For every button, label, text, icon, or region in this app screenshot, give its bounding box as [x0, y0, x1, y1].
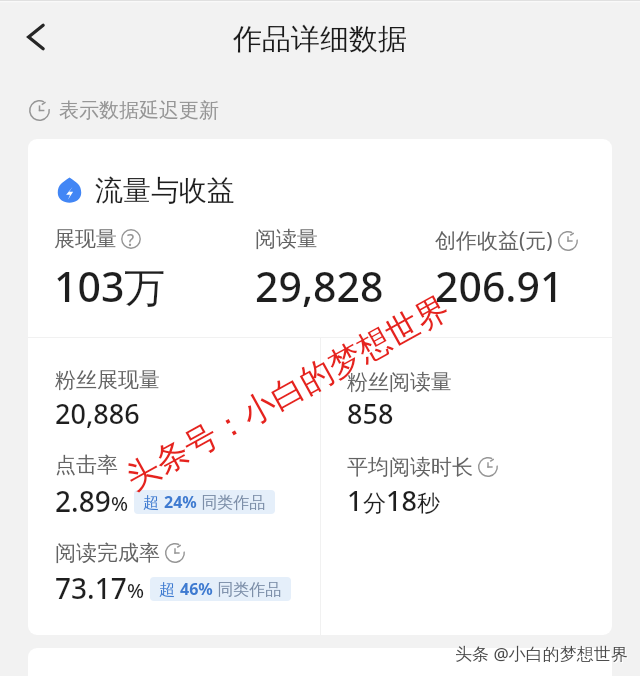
- staticText: 同类作品: [197, 491, 266, 513]
- staticText: 24%: [164, 491, 197, 513]
- staticText: 创作收益(元): [435, 226, 553, 255]
- staticText: 阅读完成率: [55, 540, 160, 566]
- staticText: 46%: [180, 578, 213, 600]
- staticText: 点击率: [55, 452, 118, 478]
- staticText: 粉丝展现量: [55, 367, 160, 393]
- button[interactable]: 超: [134, 490, 275, 514]
- staticText: ?: [127, 229, 135, 249]
- staticText: 流量与收益: [95, 173, 235, 208]
- button[interactable]: 超: [150, 577, 291, 601]
- staticText: 2.89: [55, 482, 111, 520]
- staticText: 头条 @小白的梦想世界: [455, 642, 628, 665]
- staticText: 平均阅读时长: [347, 454, 473, 480]
- button[interactable]: Back: [13, 13, 61, 61]
- staticText: 29,828: [255, 258, 384, 314]
- staticText: 分: [363, 489, 386, 518]
- staticText: 18: [386, 482, 417, 519]
- staticText: 超: [159, 578, 180, 600]
- staticText: 粉丝阅读量: [347, 369, 452, 395]
- staticText: 作品详细数据: [0, 21, 640, 58]
- staticText: %: [127, 577, 145, 604]
- staticText: 展现量: [54, 226, 117, 252]
- staticText: 1: [347, 482, 363, 519]
- staticText: 20,886: [55, 395, 140, 432]
- staticText: 超: [143, 491, 164, 513]
- staticText: 858: [347, 395, 394, 432]
- staticText: 秒: [417, 489, 440, 518]
- staticText: 103万: [54, 258, 166, 314]
- staticText: 头条号：小白的梦想世界: [119, 287, 456, 499]
- staticText: 阅读量: [255, 226, 318, 252]
- staticText: 206.91: [435, 258, 564, 314]
- staticText: 同类作品: [213, 578, 282, 600]
- staticText: 73.17: [55, 569, 127, 607]
- staticText: 头条 @小白的梦想世界: [456, 643, 629, 666]
- staticText: %: [111, 490, 129, 517]
- staticText: 表示数据延迟更新: [59, 98, 219, 123]
